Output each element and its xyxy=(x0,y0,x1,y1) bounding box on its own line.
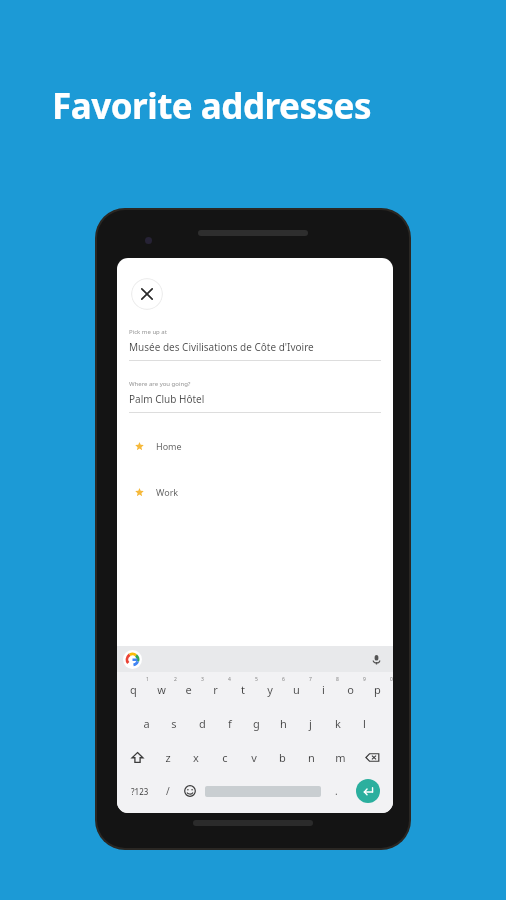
button[interactable]: w xyxy=(147,679,175,699)
staticText: 9 xyxy=(363,676,366,683)
staticText: i xyxy=(322,682,325,697)
staticText: Favorite addresses xyxy=(52,82,472,130)
button[interactable]: s xyxy=(160,713,188,733)
staticText: y xyxy=(267,682,273,697)
staticText: 6 xyxy=(282,676,285,683)
button[interactable]: u xyxy=(283,679,310,699)
button[interactable]: / xyxy=(157,777,178,805)
staticText: w xyxy=(157,682,166,697)
staticText: u xyxy=(293,682,300,697)
staticText: m xyxy=(335,750,346,765)
staticText: g xyxy=(253,716,260,731)
staticText: 1 xyxy=(146,676,149,683)
button[interactable]: t xyxy=(229,679,256,699)
button[interactable]: j xyxy=(297,713,324,733)
button[interactable]: b xyxy=(268,747,297,767)
button[interactable]: z xyxy=(154,747,182,767)
staticText: / xyxy=(166,784,170,798)
button[interactable]: r xyxy=(202,679,229,699)
button[interactable]: Voice input xyxy=(367,650,385,668)
staticText: n xyxy=(308,750,315,765)
staticText: s xyxy=(171,716,177,731)
staticText: 8 xyxy=(336,676,339,683)
staticText: l xyxy=(363,716,366,731)
staticText: p xyxy=(374,682,381,697)
button[interactable]: n xyxy=(297,747,326,767)
staticText: f xyxy=(228,716,232,731)
button[interactable]: y xyxy=(256,679,283,699)
staticText: Where are you going? xyxy=(129,380,191,388)
button[interactable]: Shift xyxy=(121,747,154,767)
staticText: Palm Club Hôtel xyxy=(129,392,205,406)
staticText: 5 xyxy=(255,676,258,683)
staticText: r xyxy=(213,682,218,697)
button[interactable]: f xyxy=(216,713,243,733)
button[interactable]: m xyxy=(326,747,355,767)
staticText: z xyxy=(165,750,171,765)
button[interactable]: ?123 xyxy=(122,777,157,805)
staticText: d xyxy=(199,716,206,731)
staticText: j xyxy=(309,716,312,731)
staticText: q xyxy=(130,682,137,697)
button[interactable]: . xyxy=(324,777,348,805)
button[interactable]: x xyxy=(182,747,210,767)
staticText: Pick me up at xyxy=(129,328,167,336)
button[interactable]: p xyxy=(364,679,391,699)
button[interactable]: c xyxy=(210,747,239,767)
staticText: 0 xyxy=(390,676,393,683)
staticText: c xyxy=(222,750,228,765)
button[interactable]: Backspace xyxy=(355,747,389,767)
button[interactable]: k xyxy=(324,713,351,733)
button[interactable]: l xyxy=(351,713,378,733)
staticText: ?123 xyxy=(131,786,149,797)
button[interactable]: Enter xyxy=(348,777,388,805)
staticText: 2 xyxy=(174,676,177,683)
button[interactable]: Home xyxy=(117,435,393,457)
staticText: o xyxy=(347,682,354,697)
button[interactable]: Close xyxy=(131,278,163,310)
button[interactable]: Emoji xyxy=(178,777,202,805)
button[interactable]: g xyxy=(243,713,270,733)
staticText: 4 xyxy=(228,676,231,683)
staticText: Home xyxy=(156,440,182,452)
button[interactable]: v xyxy=(239,747,268,767)
staticText: Work xyxy=(156,486,179,498)
staticText: e xyxy=(185,682,192,697)
button[interactable]: a xyxy=(132,713,160,733)
staticText: 7 xyxy=(309,676,312,683)
button[interactable]: i xyxy=(310,679,337,699)
button[interactable]: d xyxy=(188,713,216,733)
staticText: 3 xyxy=(201,676,204,683)
staticText: b xyxy=(279,750,286,765)
staticText: . xyxy=(335,784,338,798)
button[interactable]: o xyxy=(337,679,364,699)
staticText: Musée des Civilisations de Côte d'Ivoire xyxy=(129,340,314,354)
button[interactable]: Work xyxy=(117,481,393,503)
button[interactable]: Google xyxy=(123,650,142,669)
button[interactable]: h xyxy=(270,713,297,733)
staticText: x xyxy=(193,750,199,765)
button[interactable]: q xyxy=(119,679,147,699)
staticText: h xyxy=(280,716,287,731)
staticText: a xyxy=(143,716,150,731)
staticText: t xyxy=(241,682,245,697)
button[interactable]: e xyxy=(175,679,202,699)
staticText: k xyxy=(335,716,341,731)
staticText: v xyxy=(251,750,257,765)
